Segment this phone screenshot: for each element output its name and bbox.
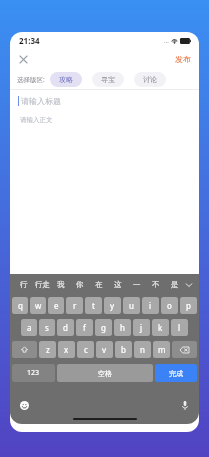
staticText: 我 — [57, 280, 65, 289]
button[interactable]: 攻略 — [50, 72, 82, 87]
staticText: 在 — [95, 280, 103, 289]
button[interactable]: 这 — [108, 274, 127, 295]
staticText: 行 — [20, 280, 28, 289]
staticText: h — [120, 322, 125, 333]
staticText: 请输入标题 — [21, 96, 61, 106]
staticText: 这 — [114, 280, 122, 289]
button[interactable]: p — [180, 297, 197, 314]
button[interactable]: 在 — [89, 274, 108, 295]
staticText: x — [64, 344, 69, 355]
button[interactable]: d — [57, 319, 74, 336]
staticText: b — [121, 344, 126, 355]
staticText: v — [102, 344, 107, 355]
staticText: g — [101, 322, 106, 333]
staticText: n — [140, 344, 145, 355]
staticText: a — [27, 322, 32, 333]
staticText: 是 — [171, 280, 179, 289]
button[interactable]: 讨论 — [134, 72, 166, 87]
button[interactable]: t — [85, 297, 102, 314]
button[interactable]: r — [66, 297, 83, 314]
button[interactable]: 一 — [127, 274, 146, 295]
staticText: l — [178, 322, 181, 333]
button[interactable]: b — [115, 341, 132, 358]
button[interactable]: i — [142, 297, 159, 314]
staticText: 行走 — [35, 280, 50, 289]
staticText: j — [140, 322, 143, 333]
staticText: 完成 — [169, 369, 183, 378]
staticText: 寻宝 — [101, 75, 115, 84]
staticText: 21:34 — [19, 35, 40, 46]
staticText: y — [110, 300, 115, 311]
button[interactable]: 寻宝 — [92, 72, 124, 87]
button[interactable]: Emoji — [18, 399, 30, 411]
button[interactable]: Expand candidates — [184, 274, 194, 295]
button[interactable]: k — [152, 319, 169, 336]
staticText: s — [45, 322, 49, 333]
button[interactable]: Close — [15, 51, 31, 67]
staticText: e — [54, 300, 59, 311]
button[interactable]: w — [30, 297, 46, 314]
button[interactable]: 行 — [15, 274, 33, 295]
button[interactable]: 你 — [70, 274, 89, 295]
button[interactable]: 123 — [12, 364, 55, 382]
staticText: 请输入正文 — [20, 116, 53, 124]
staticText: ... — [164, 37, 169, 45]
button[interactable]: m — [153, 341, 170, 358]
button[interactable]: f — [76, 319, 93, 336]
button[interactable]: 行走 — [33, 274, 51, 295]
staticText: i — [149, 300, 152, 311]
staticText: 123 — [27, 368, 40, 378]
staticText: r — [73, 300, 77, 311]
button[interactable]: u — [123, 297, 140, 314]
button[interactable]: z — [39, 341, 56, 358]
button[interactable]: 空格 — [57, 364, 153, 382]
button[interactable]: 是 — [165, 274, 184, 295]
button[interactable]: x — [58, 341, 75, 358]
staticText: q — [18, 300, 23, 311]
staticText: f — [83, 322, 86, 333]
staticText: c — [84, 344, 88, 355]
button[interactable]: h — [114, 319, 131, 336]
button[interactable]: Voice input — [179, 399, 191, 411]
button[interactable]: e — [48, 297, 64, 314]
staticText: p — [186, 300, 191, 311]
staticText: 空格 — [98, 369, 112, 378]
button[interactable]: y — [104, 297, 121, 314]
staticText: 讨论 — [143, 75, 157, 84]
button[interactable]: c — [77, 341, 94, 358]
button[interactable]: s — [39, 319, 55, 336]
button[interactable]: 完成 — [155, 364, 197, 382]
staticText: k — [158, 322, 163, 333]
button[interactable]: o — [161, 297, 178, 314]
button[interactable]: 我 — [51, 274, 70, 295]
button[interactable]: g — [95, 319, 112, 336]
staticText: m — [158, 344, 166, 355]
staticText: o — [167, 300, 172, 311]
button[interactable]: n — [134, 341, 151, 358]
staticText: 选择版区: — [17, 75, 45, 84]
button[interactable]: 发布 — [167, 51, 199, 67]
button[interactable]: q — [12, 297, 28, 314]
button[interactable]: Shift — [12, 341, 37, 358]
button[interactable]: Backspace — [172, 341, 197, 358]
staticText: 不 — [152, 280, 160, 289]
button[interactable]: v — [96, 341, 113, 358]
staticText: 发布 — [175, 54, 191, 64]
staticText: t — [92, 300, 95, 311]
staticText: 你 — [76, 280, 84, 289]
staticText: 攻略 — [59, 75, 73, 84]
staticText: d — [63, 322, 68, 333]
button[interactable]: j — [133, 319, 150, 336]
staticText: w — [35, 300, 42, 311]
button[interactable]: 不 — [146, 274, 165, 295]
staticText: u — [129, 300, 134, 311]
staticText: z — [46, 344, 50, 355]
button[interactable]: a — [21, 319, 37, 336]
button[interactable]: l — [171, 319, 188, 336]
staticText: 一 — [133, 280, 141, 289]
